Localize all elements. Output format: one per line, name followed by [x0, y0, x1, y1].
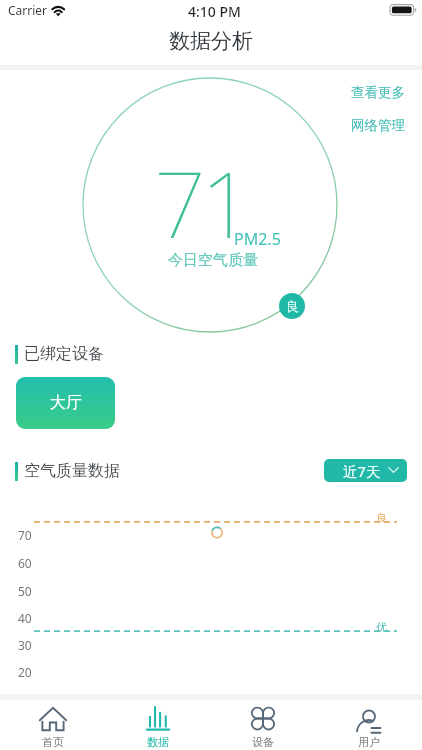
staticText: 优	[376, 620, 387, 634]
staticText: 近7天	[343, 461, 381, 481]
staticText: 数据分析	[169, 28, 253, 54]
staticText: 50	[18, 583, 32, 599]
staticText: 大厅	[50, 393, 82, 413]
button[interactable]: 查看更多	[343, 80, 413, 105]
staticText: 20	[18, 664, 32, 680]
staticText: 60	[18, 555, 32, 571]
button[interactable]: 首页	[0, 700, 105, 750]
staticText: 查看更多	[351, 84, 405, 101]
button[interactable]: 设备	[210, 700, 316, 750]
button[interactable]: 网络管理	[343, 113, 413, 138]
staticText: 良	[376, 511, 387, 525]
staticText: PM2.5	[234, 228, 281, 250]
staticText: 空气质量数据	[24, 461, 120, 481]
button[interactable]: 近7天	[324, 459, 407, 482]
staticText: 设备	[252, 735, 274, 749]
staticText: 40	[18, 610, 32, 626]
staticText: 首页	[42, 735, 64, 749]
staticText: 良	[286, 298, 299, 314]
button[interactable]: 数据	[105, 700, 210, 750]
button[interactable]: 用户	[316, 700, 422, 750]
button[interactable]: 空气质量等级 良	[279, 293, 305, 319]
staticText: 数据	[147, 735, 169, 749]
staticText: 30	[18, 637, 32, 653]
staticText: 71	[154, 141, 248, 265]
staticText: 今日空气质量	[168, 251, 258, 270]
staticText: 4:10 PM	[188, 2, 241, 21]
staticText: 用户	[358, 735, 380, 749]
staticText: Carrier	[8, 2, 48, 18]
staticText: 已绑定设备	[24, 344, 104, 364]
staticText: 网络管理	[351, 117, 405, 134]
button[interactable]: 大厅	[16, 377, 115, 429]
staticText: 70	[18, 527, 32, 543]
